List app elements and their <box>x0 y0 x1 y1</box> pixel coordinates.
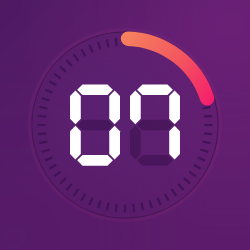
button[interactable]: Stopwatch face <box>0 0 250 250</box>
